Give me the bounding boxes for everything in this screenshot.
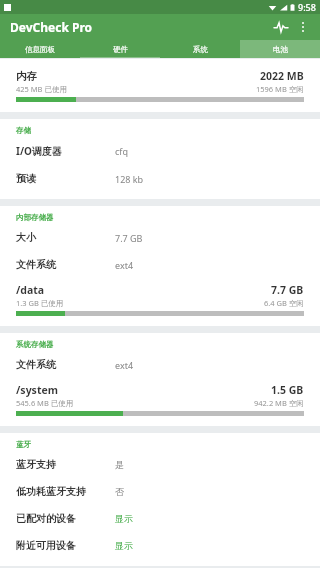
staticText: 1.3 GB 已使用 <box>16 298 264 308</box>
button[interactable]: 预读 <box>0 165 320 192</box>
button[interactable]: 信息面板 <box>0 40 80 58</box>
staticText: ext4 <box>115 359 134 371</box>
staticText: 9:58 <box>298 1 316 13</box>
staticText: 6.4 GB 空闲 <box>264 298 304 308</box>
button[interactable]: 内存 <box>0 66 320 105</box>
button[interactable]: 系统 <box>160 40 240 58</box>
staticText: 存储 <box>16 126 31 135</box>
button[interactable]: 已配对的设备 <box>0 505 320 532</box>
staticText: 显示 <box>115 513 133 524</box>
staticText: 否 <box>115 486 124 497</box>
staticText: 2022 MB <box>260 69 304 83</box>
button[interactable]: Monitoring <box>270 16 292 38</box>
staticText: 蓝牙支持 <box>16 458 115 471</box>
staticText: 942.2 MB 空闲 <box>254 398 304 408</box>
staticText: 425 MB 已使用 <box>16 84 256 94</box>
staticText: /system <box>16 383 271 397</box>
staticText: ext4 <box>115 259 134 271</box>
staticText: 显示 <box>115 540 133 551</box>
button[interactable]: 附近可用设备 <box>0 532 320 559</box>
button[interactable]: 电池 <box>240 40 320 58</box>
staticText: 信息面板 <box>25 45 55 54</box>
staticText: 蓝牙 <box>16 440 31 449</box>
staticText: 1.5 GB <box>271 383 304 397</box>
staticText: 系统存储器 <box>16 340 54 349</box>
button[interactable]: 低功耗蓝牙支持 <box>0 478 320 505</box>
staticText: 内存 <box>16 70 260 83</box>
button[interactable]: 蓝牙支持 <box>0 451 320 478</box>
staticText: 7.7 GB <box>271 283 304 297</box>
staticText: 文件系统 <box>16 358 115 371</box>
staticText: 1596 MB 空闲 <box>256 84 304 94</box>
button[interactable]: /data <box>0 280 320 319</box>
staticText: 附近可用设备 <box>16 539 115 552</box>
staticText: 128 kb <box>115 173 144 185</box>
button[interactable]: 硬件 <box>80 40 160 58</box>
staticText: DevCheck Pro <box>10 19 93 35</box>
button[interactable]: 文件系统 <box>0 351 320 378</box>
staticText: cfq <box>115 145 128 157</box>
staticText: /data <box>16 283 271 297</box>
staticText: 预读 <box>16 172 115 185</box>
staticText: 545.6 MB 已使用 <box>16 398 254 408</box>
staticText: 文件系统 <box>16 258 115 271</box>
button[interactable]: 文件系统 <box>0 251 320 278</box>
button[interactable]: I/O调度器 <box>0 137 320 165</box>
staticText: 7.7 GB <box>115 232 143 244</box>
staticText: 硬件 <box>113 45 128 54</box>
button[interactable]: 大小 <box>0 224 320 251</box>
staticText: 已配对的设备 <box>16 512 115 525</box>
staticText: 内部存储器 <box>16 213 54 222</box>
staticText: 系统 <box>193 45 208 54</box>
staticText: 是 <box>115 459 124 470</box>
staticText: I/O调度器 <box>16 144 115 158</box>
button[interactable]: More options <box>292 16 314 38</box>
staticText: 大小 <box>16 231 115 244</box>
staticText: 低功耗蓝牙支持 <box>16 485 115 498</box>
staticText: 电池 <box>273 45 288 54</box>
button[interactable]: /system <box>0 380 320 419</box>
